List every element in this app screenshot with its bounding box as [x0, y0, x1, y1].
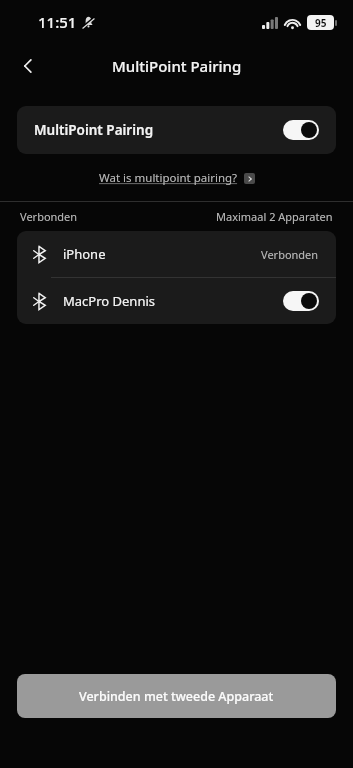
staticText: Verbonden: [261, 247, 319, 262]
staticText: 95: [315, 16, 327, 30]
button[interactable]: Toggle: [283, 120, 319, 140]
staticText: MacPro Dennis: [63, 292, 156, 310]
staticText: MultiPoint Pairing: [112, 56, 242, 76]
button[interactable]: Toggle: [283, 291, 319, 311]
staticText: Wat is multipoint pairing?: [99, 170, 238, 186]
staticText: Verbonden: [20, 209, 78, 224]
staticText: 11:51: [38, 12, 77, 32]
button[interactable]: MacPro Dennis: [17, 278, 336, 324]
staticText: Verbinden met tweede Apparaat: [79, 688, 274, 705]
button[interactable]: MultiPoint Pairing: [17, 106, 336, 154]
button[interactable]: Wat is multipoint pairing?: [95, 168, 259, 188]
button[interactable]: Verbinden met tweede Apparaat: [17, 674, 336, 718]
staticText: iPhone: [63, 245, 106, 263]
button[interactable]: Back: [8, 46, 48, 86]
button[interactable]: iPhone: [17, 231, 336, 277]
staticText: Maximaal 2 Apparaten: [216, 209, 333, 224]
staticText: MultiPoint Pairing: [34, 121, 154, 139]
